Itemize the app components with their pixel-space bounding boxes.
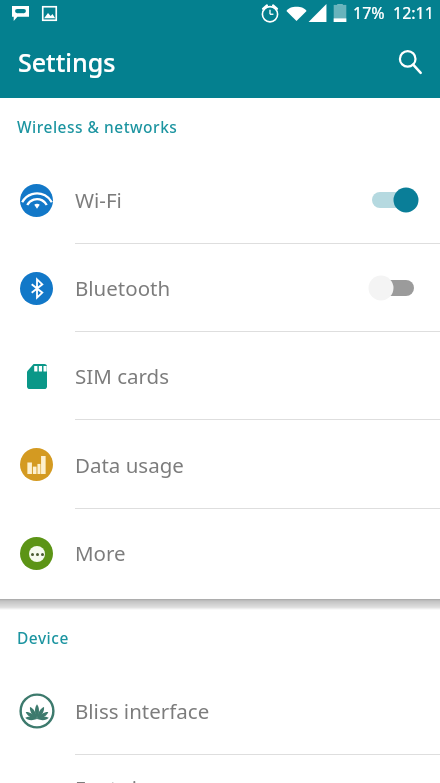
staticText: Font size [75, 775, 158, 783]
staticText: Device [17, 627, 69, 648]
button[interactable]: Switch on [368, 178, 440, 222]
button[interactable]: More [0, 509, 440, 597]
staticText: Wireless & networks [17, 116, 178, 137]
staticText: 12:11 [393, 2, 434, 24]
button[interactable]: Font size [0, 755, 440, 783]
button[interactable]: Data usage [0, 420, 440, 509]
staticText: Settings [18, 45, 116, 79]
staticText: Wi-Fi [75, 186, 122, 214]
staticText: Bliss interface [75, 697, 210, 725]
staticText: Data usage [75, 451, 184, 479]
button[interactable]: Wi-Fi [0, 156, 440, 244]
button[interactable]: Bliss interface [0, 667, 440, 755]
staticText: SIM cards [75, 362, 169, 390]
button[interactable]: SIM cards [0, 332, 440, 420]
staticText: Bluetooth [75, 274, 171, 302]
button[interactable]: Bluetooth [0, 244, 440, 332]
button[interactable]: Switch off [368, 266, 440, 310]
staticText: 17% [353, 2, 385, 24]
button[interactable]: Search [385, 38, 433, 86]
staticText: More [75, 539, 126, 567]
